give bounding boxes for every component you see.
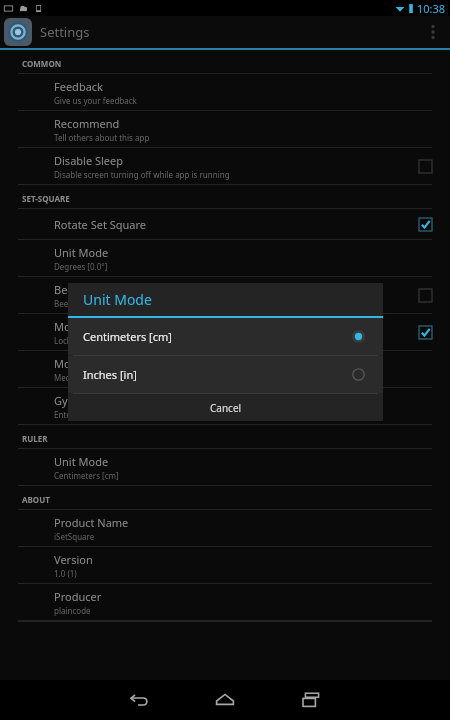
button[interactable]: Recent apps xyxy=(284,680,338,720)
staticText: 10:38 xyxy=(417,1,446,16)
staticText: plaincode xyxy=(54,605,91,616)
staticText: ABOUT xyxy=(22,494,50,505)
button[interactable]: Unchecked xyxy=(419,289,432,302)
button[interactable]: Rotate Set Square xyxy=(0,209,450,240)
button[interactable]: Version xyxy=(0,547,450,584)
staticText: Centimeters [cm] xyxy=(54,470,119,481)
staticText: Settings xyxy=(40,23,90,41)
button[interactable]: Checked xyxy=(419,218,432,231)
staticText: Degrees [0.0°] xyxy=(54,261,108,272)
staticText: RULER xyxy=(22,433,48,444)
staticText: Version xyxy=(54,552,93,567)
button[interactable]: Beep xyxy=(0,277,450,314)
staticText: Give us your feedback xyxy=(54,95,137,106)
button[interactable]: Cancel xyxy=(68,394,383,421)
staticText: Feedback xyxy=(54,79,103,94)
staticText: Disable screen turning off while app is … xyxy=(54,169,230,180)
button[interactable]: Disable Sleep xyxy=(0,148,450,185)
staticText: Unit Mode xyxy=(54,454,109,469)
staticText: Unit Mode xyxy=(83,290,152,309)
button[interactable]: Back xyxy=(112,680,166,720)
staticText: Product Name xyxy=(54,515,129,530)
button[interactable]: Unit Mode xyxy=(0,449,450,486)
staticText: Recommend xyxy=(54,116,120,131)
staticText: iSetSquare xyxy=(54,531,95,542)
button[interactable]: Unit Mode xyxy=(0,240,450,277)
staticText: Cancel xyxy=(210,401,242,415)
button[interactable]: Unchecked xyxy=(419,160,432,173)
button[interactable]: Centimeters [cm] xyxy=(68,318,383,355)
button[interactable]: More options xyxy=(416,16,450,48)
button[interactable]: Product Name xyxy=(0,510,450,547)
staticText: Centimeters [cm] xyxy=(83,329,172,344)
staticText: 1.0 (1) xyxy=(54,568,77,579)
staticText: Beep on snap xyxy=(54,298,106,309)
staticText: Enter gyro correction value set. xyxy=(54,409,172,420)
staticText: Disable Sleep xyxy=(54,153,124,168)
button[interactable]: Inches [in] xyxy=(68,356,383,393)
staticText: Motion Lock xyxy=(54,319,118,334)
staticText: Rotate Set Square xyxy=(54,217,147,232)
staticText: Medium xyxy=(54,372,86,383)
button[interactable]: Producer xyxy=(0,584,450,621)
staticText: Gyroscope xyxy=(54,393,109,408)
button[interactable]: Checked xyxy=(419,326,432,339)
button[interactable]: Recommend xyxy=(0,111,450,148)
button[interactable]: Motion Lock xyxy=(0,314,450,351)
button[interactable]: App icon xyxy=(4,18,32,46)
button[interactable]: Gyroscope xyxy=(0,388,450,425)
staticText: Unit Mode xyxy=(54,245,109,260)
staticText: Motion Sensitivity xyxy=(54,356,146,371)
button[interactable]: Home xyxy=(198,680,252,720)
staticText: Lock on motion xyxy=(54,335,113,346)
staticText: Producer xyxy=(54,589,102,604)
staticText: SET-SQUARE xyxy=(22,193,70,204)
button[interactable]: Motion Sensitivity xyxy=(0,351,450,388)
staticText: COMMON xyxy=(22,58,62,69)
staticText: Tell others about this app xyxy=(54,132,150,143)
staticText: Beep xyxy=(54,282,81,297)
button[interactable]: Feedback xyxy=(0,74,450,111)
staticText: Inches [in] xyxy=(83,367,137,382)
